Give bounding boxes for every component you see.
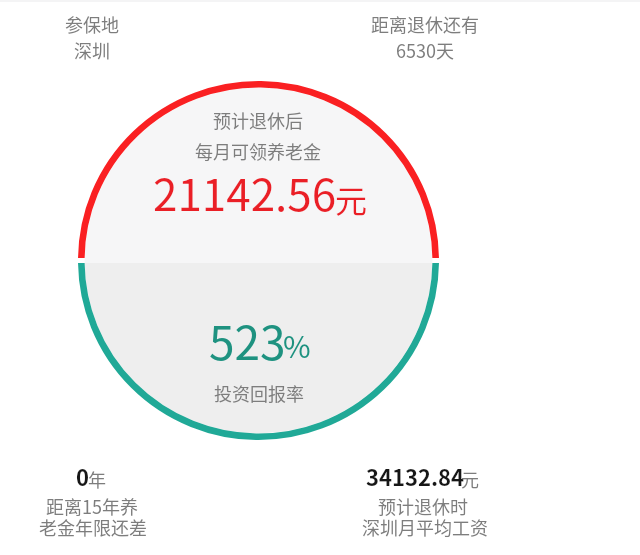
staticText: 每月可领养老金 — [195, 138, 321, 164]
staticText: 元 — [461, 466, 479, 492]
staticText: 深圳 — [74, 37, 110, 63]
staticText: 深圳月平均工资 — [362, 514, 488, 540]
button[interactable] — [342, 458, 507, 550]
staticText: 21142.56 — [153, 160, 337, 224]
button[interactable]: 距离退休还有 — [345, 11, 505, 63]
staticText: 6530天 — [396, 37, 454, 63]
staticText: 投资回报率 — [214, 380, 304, 406]
staticText: 年 — [88, 466, 106, 492]
staticText: 老金年限还差 — [39, 514, 147, 540]
staticText: 34132.84 — [366, 460, 465, 492]
staticText: 参保地 — [65, 11, 119, 37]
staticText: 0 — [76, 460, 89, 492]
staticText: 距离退休还有 — [371, 11, 479, 37]
staticText: % — [283, 323, 311, 366]
button[interactable] — [10, 458, 175, 550]
staticText: 预计退休后 — [213, 107, 303, 133]
staticText: 元 — [335, 176, 368, 222]
staticText: 523 — [209, 307, 286, 374]
staticText: 距离15年养 — [46, 493, 138, 519]
button[interactable]: 参保地 — [22, 11, 162, 63]
staticText: 预计退休时 — [378, 493, 468, 519]
